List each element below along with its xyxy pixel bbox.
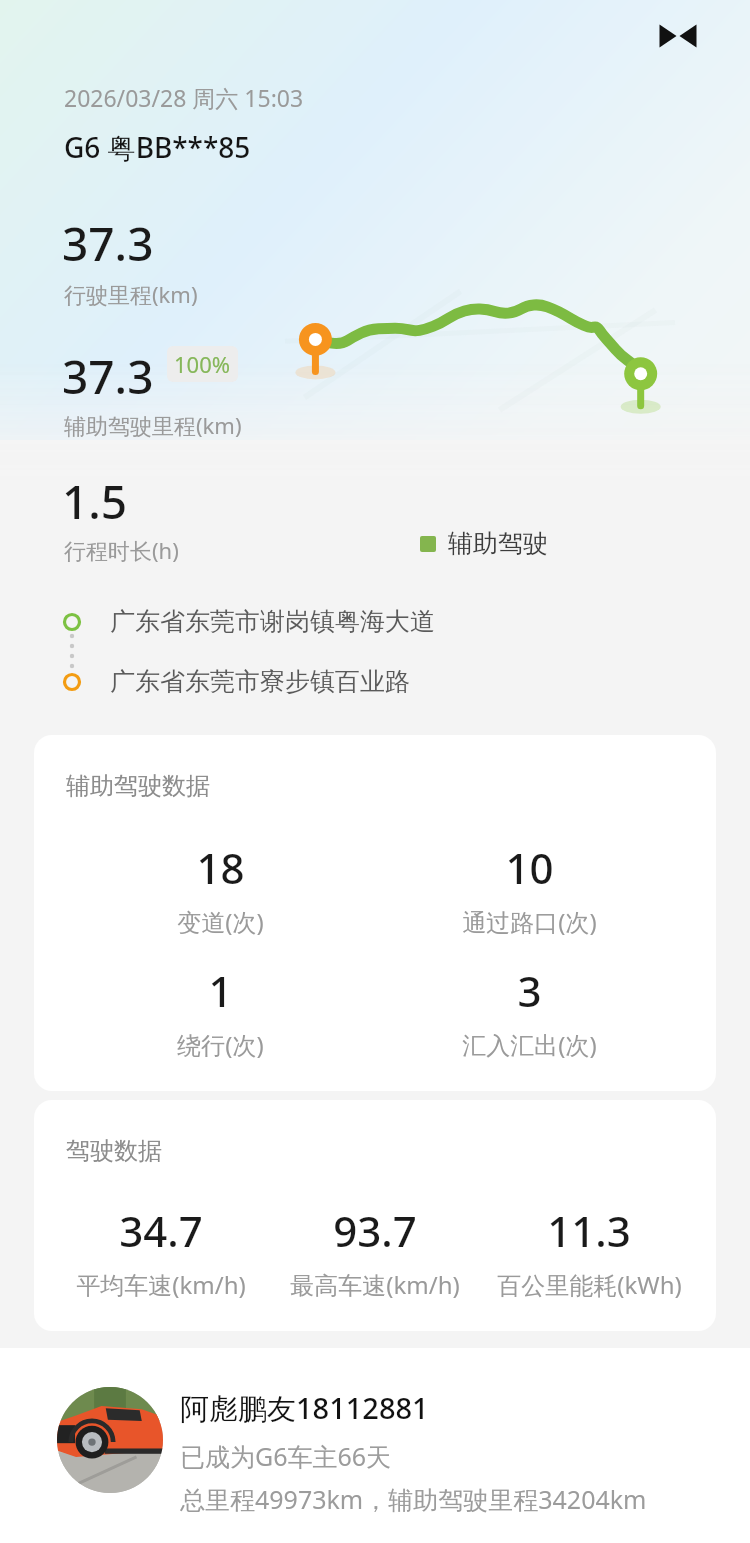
staticText: 广东省东莞市谢岗镇粤海大道 xyxy=(110,606,435,637)
button[interactable]: 阿彪鹏友18112881 xyxy=(0,1348,750,1543)
button[interactable]: 10 xyxy=(375,839,684,938)
staticText: 37.3 xyxy=(62,212,154,275)
staticText: 最高车速(km/h) xyxy=(290,1268,460,1301)
button[interactable]: 93.7 xyxy=(268,1202,482,1301)
staticText: 37.3 xyxy=(62,345,154,408)
button[interactable]: 辅助驾驶数据 xyxy=(34,735,716,1091)
staticText: 行程时长(h) xyxy=(64,535,179,565)
staticText: 18 xyxy=(196,839,245,896)
staticText: 百公里能耗(kWh) xyxy=(497,1268,682,1301)
staticText: 1 xyxy=(208,962,233,1019)
staticText: 汇入汇出(次) xyxy=(462,1028,597,1061)
staticText: 10 xyxy=(505,839,554,896)
staticText: 驾驶数据 xyxy=(66,1136,162,1166)
button[interactable]: 1 xyxy=(66,962,375,1061)
button[interactable]: 3 xyxy=(375,962,684,1061)
button[interactable]: Close xyxy=(650,8,706,64)
staticText: 辅助驾驶里程(km) xyxy=(64,410,242,440)
staticText: 变道(次) xyxy=(177,905,264,938)
staticText: 广东省东莞市寮步镇百业路 xyxy=(110,666,410,697)
staticText: 已成为G6车主66天 xyxy=(180,1439,392,1473)
staticText: 通过路口(次) xyxy=(462,905,597,938)
staticText: 总里程49973km，辅助驾驶里程34204km xyxy=(180,1482,647,1516)
staticText: G6 粤BB***85 xyxy=(64,128,251,166)
staticText: 1.5 xyxy=(62,470,128,533)
staticText: 辅助驾驶数据 xyxy=(66,771,210,801)
staticText: 平均车速(km/h) xyxy=(76,1268,246,1301)
button[interactable]: 驾驶数据 xyxy=(34,1100,716,1331)
staticText: 绕行(次) xyxy=(177,1028,264,1061)
staticText: 11.3 xyxy=(547,1202,631,1259)
staticText: 93.7 xyxy=(333,1202,417,1259)
button[interactable]: 18 xyxy=(66,839,375,938)
staticText: 34.7 xyxy=(119,1202,203,1259)
staticText: 辅助驾驶 xyxy=(448,528,548,559)
staticText: 100% xyxy=(174,349,231,379)
staticText: 3 xyxy=(517,962,542,1019)
staticText: 阿彪鹏友18112881 xyxy=(180,1388,429,1428)
button[interactable]: 34.7 xyxy=(54,1202,268,1301)
staticText: 行驶里程(km) xyxy=(64,279,198,309)
staticText: 2026/03/28 周六 15:03 xyxy=(64,82,304,113)
button[interactable]: 11.3 xyxy=(482,1202,696,1301)
